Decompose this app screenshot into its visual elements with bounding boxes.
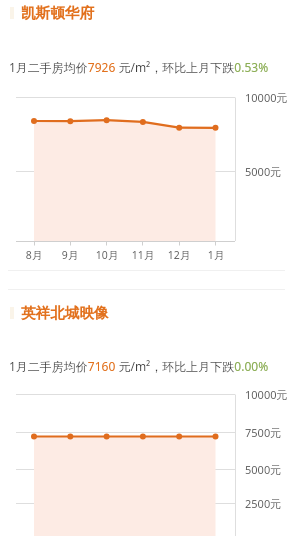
staticText: 2500元 xyxy=(245,496,282,511)
button[interactable]: 英祥北城映像 xyxy=(0,303,294,323)
staticText: 9月 xyxy=(54,248,86,262)
staticText: 7500元 xyxy=(245,425,282,440)
staticText: 12月 xyxy=(163,248,195,262)
staticText: 5000元 xyxy=(245,462,282,477)
staticText: 凯斯顿华府 xyxy=(21,4,94,22)
staticText: 5000元 xyxy=(245,164,282,179)
button[interactable]: 凯斯顿华府 xyxy=(0,3,294,23)
staticText: 1月二手房均价7926 元/m²，环比上月下跌0.53% xyxy=(9,59,269,75)
staticText: 10000元 xyxy=(245,387,288,402)
staticText: 英祥北城映像 xyxy=(21,304,109,322)
staticText: 1月 xyxy=(200,248,232,262)
staticText: 11月 xyxy=(127,248,159,262)
staticText: 1月二手房均价7160 元/m²，环比上月下跌0.00% xyxy=(9,358,269,374)
staticText: 8月 xyxy=(18,248,50,262)
staticText: 10000元 xyxy=(245,90,288,105)
staticText: 10月 xyxy=(91,248,123,262)
